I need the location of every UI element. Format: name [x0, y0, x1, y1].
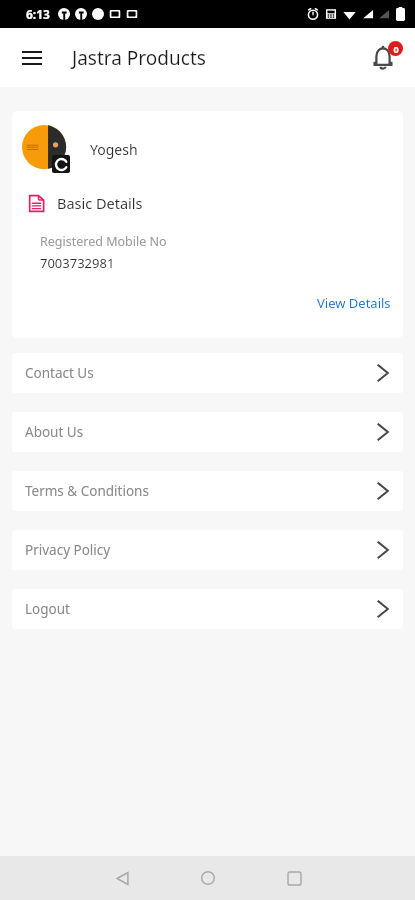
staticText: Privacy Policy	[25, 541, 111, 559]
button[interactable]: Yogesh	[12, 111, 403, 338]
staticText: Logout	[25, 600, 70, 618]
staticText: Yogesh	[90, 140, 138, 159]
button[interactable]: Home	[180, 856, 236, 900]
staticText: 6:13	[26, 6, 50, 22]
staticText: View Details	[317, 294, 391, 312]
staticText: 7003732981	[40, 254, 115, 272]
button[interactable]: View Details	[305, 290, 403, 316]
button[interactable]: Notifications	[359, 34, 407, 82]
button[interactable]: Contact Us	[12, 353, 403, 393]
staticText: Jastra Products	[72, 45, 206, 71]
button[interactable]: Back	[94, 856, 150, 900]
staticText: Registered Mobile No	[40, 233, 167, 250]
staticText: About Us	[25, 423, 84, 441]
staticText: Contact Us	[25, 364, 94, 382]
button[interactable]: Recent apps	[266, 856, 322, 900]
button[interactable]: Logout	[12, 589, 403, 629]
staticText: 0	[393, 43, 399, 55]
button[interactable]: Terms & Conditions	[12, 471, 403, 511]
staticText: Terms & Conditions	[25, 482, 149, 500]
button[interactable]: Privacy Policy	[12, 530, 403, 570]
staticText: Basic Details	[57, 193, 143, 213]
button[interactable]: Open navigation menu	[10, 36, 54, 80]
button[interactable]: About Us	[12, 412, 403, 452]
